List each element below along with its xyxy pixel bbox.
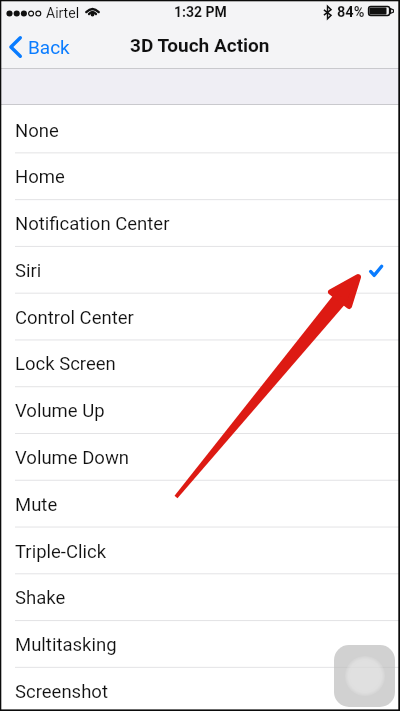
- staticText: Siri: [15, 260, 42, 282]
- staticText: Multitasking: [15, 634, 117, 656]
- staticText: Triple-Click: [15, 541, 107, 563]
- button[interactable]: Screenshot: [0, 668, 400, 711]
- staticText: Control Center: [15, 307, 134, 329]
- staticText: Volume Up: [15, 400, 105, 422]
- button[interactable]: Lock Screen: [0, 340, 400, 387]
- staticText: Home: [15, 166, 65, 188]
- staticText: Mute: [15, 494, 58, 516]
- staticText: Notification Center: [15, 213, 170, 235]
- staticText: None: [15, 120, 59, 142]
- staticText: Back: [28, 36, 70, 58]
- other: Selected: [369, 265, 383, 277]
- button[interactable]: None: [0, 107, 400, 154]
- button[interactable]: Control Center: [0, 294, 400, 341]
- button[interactable]: Triple-Click: [0, 528, 400, 575]
- button[interactable]: Home: [0, 153, 400, 200]
- staticText: 84%: [337, 4, 365, 21]
- button[interactable]: Mute: [0, 481, 400, 528]
- staticText: Airtel: [46, 5, 80, 21]
- button[interactable]: Siri: [0, 247, 400, 294]
- staticText: Volume Down: [15, 447, 130, 469]
- button[interactable]: Notification Center: [0, 200, 400, 247]
- button[interactable]: Shake: [0, 574, 400, 621]
- button[interactable]: Volume Up: [0, 387, 400, 434]
- staticText: 3D Touch Action: [130, 34, 270, 56]
- staticText: Screenshot: [15, 681, 108, 703]
- staticText: 1:32 PM: [174, 4, 227, 20]
- button[interactable]: Volume Down: [0, 434, 400, 481]
- button[interactable]: Multitasking: [0, 621, 400, 668]
- other: Back: [9, 36, 22, 58]
- staticText: Shake: [15, 587, 66, 609]
- button[interactable]: Back: [0, 31, 80, 63]
- staticText: Lock Screen: [15, 353, 116, 375]
- button[interactable]: AssistiveTouch: [334, 645, 395, 707]
